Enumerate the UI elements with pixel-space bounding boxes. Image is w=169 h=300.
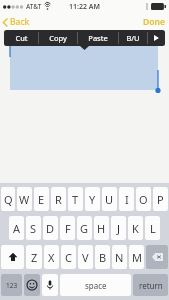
button[interactable]: C bbox=[61, 245, 76, 269]
button[interactable]: N bbox=[112, 245, 127, 269]
button[interactable]: R bbox=[51, 187, 66, 211]
staticText: L bbox=[150, 221, 156, 236]
staticText: G bbox=[80, 221, 89, 236]
staticText: F bbox=[65, 221, 71, 236]
staticText: Q bbox=[4, 192, 13, 207]
staticText: E bbox=[38, 192, 45, 207]
button[interactable]: Y bbox=[85, 187, 100, 211]
staticText: 123 bbox=[6, 281, 18, 290]
button[interactable]: K bbox=[128, 216, 143, 240]
button[interactable]: T bbox=[68, 187, 83, 211]
button[interactable]: M bbox=[129, 245, 144, 269]
button[interactable]: More bbox=[148, 30, 165, 46]
button[interactable]: I bbox=[119, 187, 134, 211]
staticText: K bbox=[132, 221, 139, 236]
staticText: P bbox=[157, 192, 164, 207]
button[interactable]: Paste bbox=[78, 30, 118, 46]
button[interactable]: Shift bbox=[1, 245, 24, 269]
staticText: U bbox=[105, 192, 114, 207]
staticText: AT&T bbox=[26, 2, 42, 11]
staticText: M bbox=[132, 250, 142, 265]
staticText: D bbox=[46, 221, 55, 236]
staticText: T bbox=[72, 192, 79, 207]
staticText: V bbox=[82, 250, 89, 265]
button[interactable]: Backspace bbox=[146, 245, 168, 269]
button[interactable]: Emoji bbox=[24, 274, 40, 296]
staticText: Back bbox=[10, 16, 30, 28]
staticText: O bbox=[139, 192, 148, 207]
staticText: space bbox=[85, 280, 107, 291]
button[interactable]: 123 bbox=[1, 274, 22, 296]
staticText: Done bbox=[143, 16, 165, 28]
staticText: Y bbox=[89, 192, 96, 207]
button[interactable]: H bbox=[94, 216, 109, 240]
staticText: Z bbox=[31, 250, 38, 265]
button[interactable]: A bbox=[9, 216, 24, 240]
staticText: N bbox=[115, 250, 124, 265]
staticText: R bbox=[55, 192, 62, 207]
button[interactable]: B/U bbox=[119, 30, 147, 46]
button[interactable]: E bbox=[34, 187, 49, 211]
button[interactable]: Dictate bbox=[42, 274, 58, 296]
button[interactable]: O bbox=[136, 187, 151, 211]
button[interactable]: J bbox=[111, 216, 126, 240]
staticText: Cut bbox=[15, 33, 28, 43]
staticText: B bbox=[99, 250, 107, 265]
staticText: C bbox=[65, 250, 72, 265]
button[interactable]: L bbox=[145, 216, 160, 240]
button[interactable]: Z bbox=[26, 245, 42, 269]
staticText: A bbox=[13, 221, 21, 236]
button[interactable]: D bbox=[43, 216, 58, 240]
staticText: B/U bbox=[126, 33, 140, 43]
staticText: return bbox=[139, 280, 163, 291]
staticText: 11:22 AM bbox=[69, 2, 100, 12]
button[interactable]: return bbox=[133, 274, 168, 296]
button[interactable]: Done bbox=[139, 14, 169, 30]
button[interactable]: Back bbox=[0, 14, 36, 30]
staticText: Paste bbox=[88, 33, 108, 43]
button[interactable]: V bbox=[78, 245, 93, 269]
staticText: S bbox=[30, 221, 37, 236]
staticText: Copy bbox=[49, 33, 67, 43]
staticText: W bbox=[19, 192, 30, 207]
button[interactable]: G bbox=[77, 216, 92, 240]
staticText: X bbox=[48, 250, 55, 265]
button[interactable]: B bbox=[95, 245, 110, 269]
button[interactable]: Cut bbox=[4, 30, 38, 46]
staticText: J bbox=[117, 221, 121, 236]
button[interactable]: F bbox=[60, 216, 75, 240]
button[interactable]: S bbox=[26, 216, 41, 240]
button[interactable]: W bbox=[17, 187, 32, 211]
button[interactable]: U bbox=[102, 187, 117, 211]
staticText: I bbox=[125, 192, 129, 207]
button[interactable]: Q bbox=[1, 187, 15, 211]
button[interactable]: space bbox=[60, 274, 131, 296]
button[interactable]: Copy bbox=[39, 30, 77, 46]
button[interactable]: P bbox=[153, 187, 168, 211]
staticText: H bbox=[97, 221, 106, 236]
button[interactable]: X bbox=[44, 245, 59, 269]
